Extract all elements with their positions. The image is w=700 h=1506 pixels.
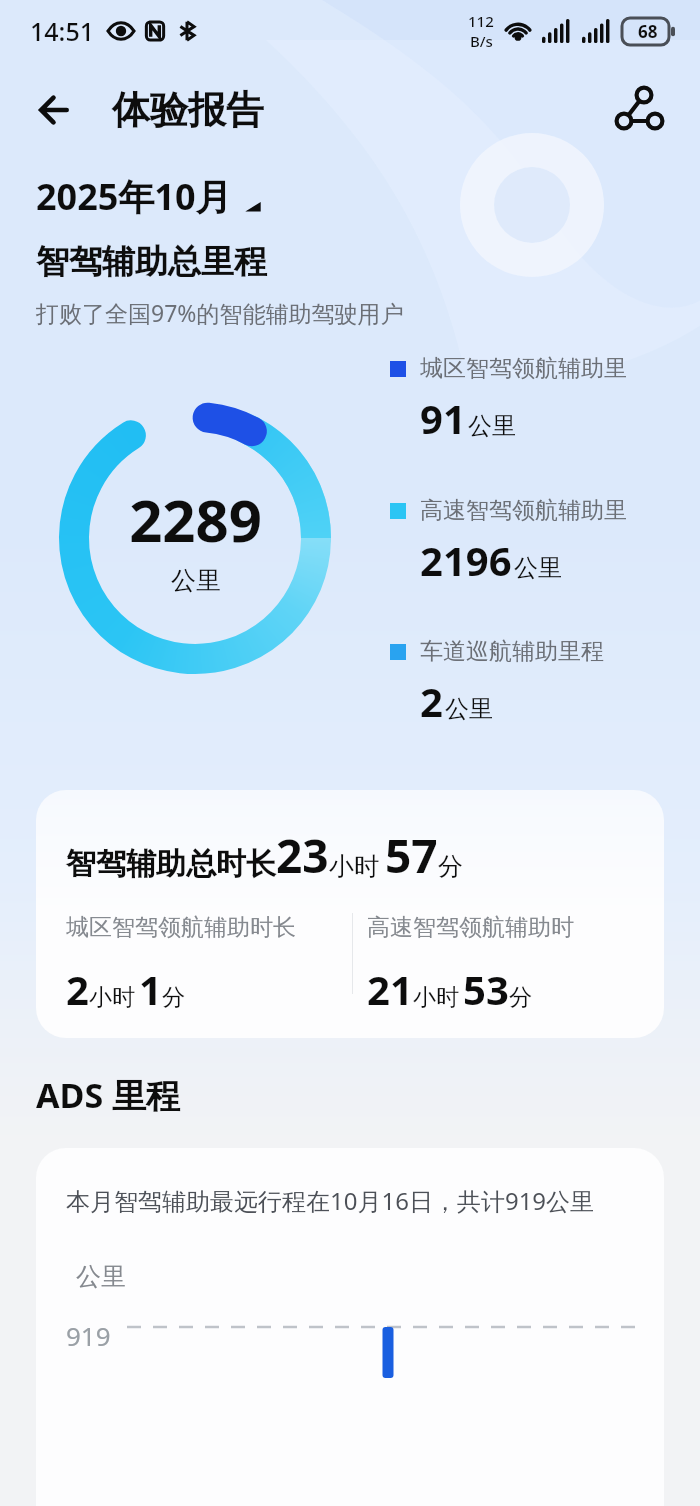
staticText: 91	[420, 391, 466, 445]
staticText: 2196	[420, 533, 512, 587]
button[interactable]: 本月智驾辅助最远行程在10月16日，共计919公里	[36, 1148, 664, 1506]
staticText: 体验报告	[112, 86, 264, 134]
staticText: 城区智驾领航辅助里	[420, 354, 627, 383]
staticText: 2	[420, 674, 443, 728]
staticText: 车道巡航辅助里程	[420, 637, 604, 666]
staticText: 分	[438, 851, 463, 882]
staticText: 14:51	[30, 14, 95, 48]
staticText: 公里	[445, 694, 493, 724]
staticText: 2	[66, 962, 89, 1016]
staticText: 公里	[76, 1261, 126, 1292]
staticText: B/s	[470, 31, 493, 51]
staticText: 高速智驾领航辅助时	[367, 913, 574, 942]
staticText: 53	[463, 962, 509, 1016]
button[interactable]: 智驾辅助总时长	[36, 790, 664, 1038]
staticText: 分	[162, 983, 185, 1012]
button[interactable]: 2025年10月	[36, 172, 264, 221]
staticText: 57	[385, 824, 438, 887]
staticText: 919	[66, 1318, 111, 1353]
staticText: 1	[139, 962, 162, 1016]
staticText: 公里	[171, 565, 221, 596]
staticText: 本月智驾辅助最远行程在10月16日，共计919公里	[66, 1184, 595, 1217]
staticText: ADS 里程	[36, 1072, 180, 1118]
staticText: 2025年10月	[36, 172, 232, 221]
staticText: 68	[638, 20, 658, 43]
staticText: 分	[509, 983, 532, 1012]
staticText: 公里	[468, 411, 516, 441]
staticText: 公里	[514, 553, 562, 583]
staticText: 智驾辅助总里程	[36, 241, 267, 283]
button[interactable]: Back	[30, 83, 84, 137]
staticText: 高速智驾领航辅助里	[420, 496, 627, 525]
staticText: 城区智驾领航辅助时长	[66, 913, 296, 942]
staticText: 小时	[89, 983, 135, 1012]
button[interactable]: Share	[608, 79, 670, 141]
staticText: 112	[468, 11, 494, 31]
staticText: 2289	[129, 480, 262, 559]
staticText: 小时	[329, 851, 379, 882]
staticText: 打败了全国97%的智能辅助驾驶用户	[36, 297, 404, 328]
staticText: 21	[367, 962, 413, 1016]
staticText: 智驾辅助总时长	[66, 845, 276, 883]
staticText: 23	[276, 824, 329, 887]
staticText: 小时	[413, 983, 459, 1012]
